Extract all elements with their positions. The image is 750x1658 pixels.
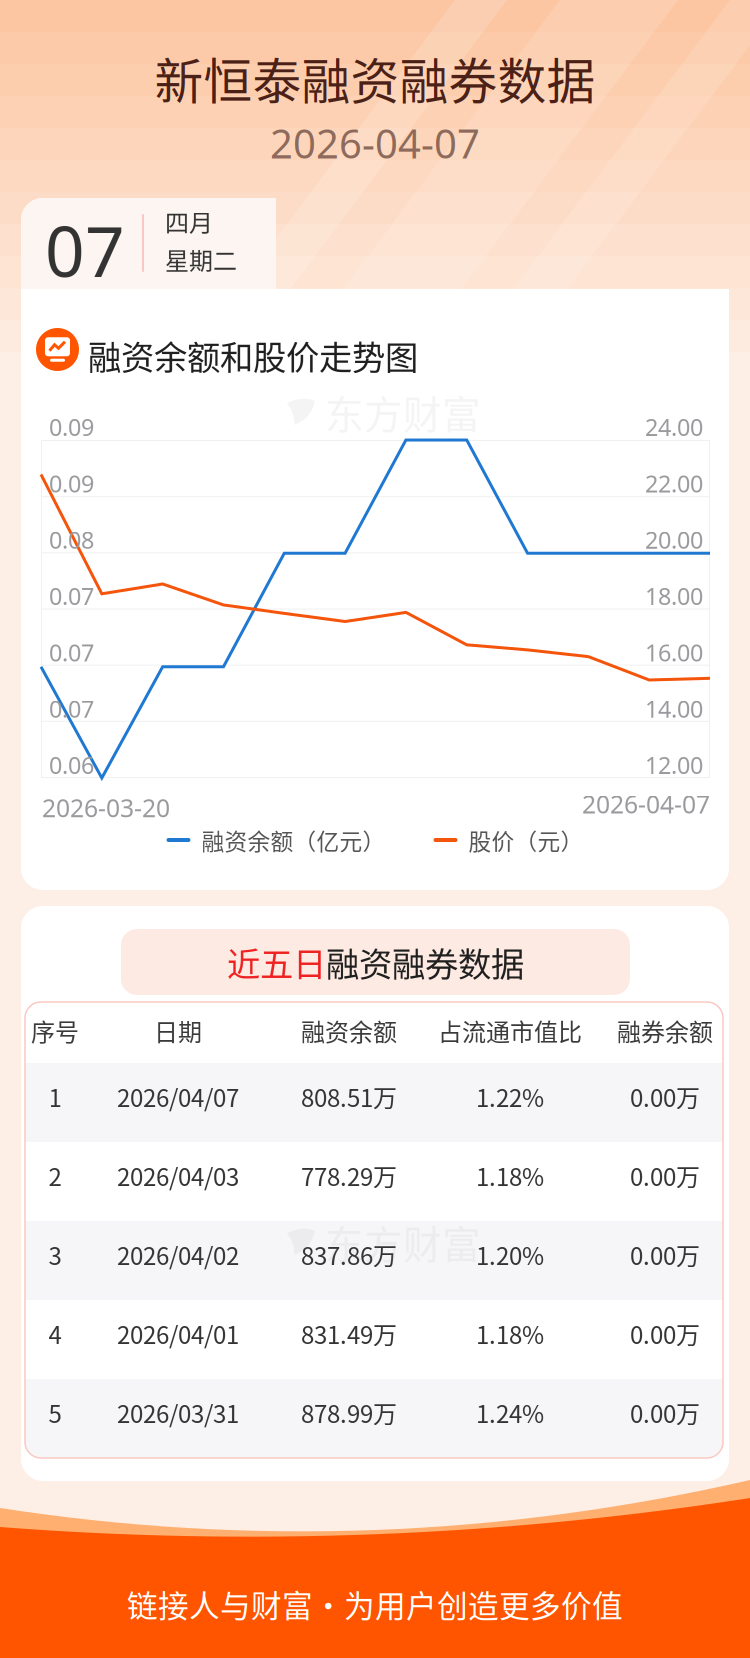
staticText: 0.07: [49, 580, 94, 612]
staticText: 星期二: [165, 242, 237, 277]
staticText: 1.20%: [476, 1237, 544, 1272]
staticText: 0.00万: [630, 1395, 700, 1430]
staticText: 融资余额（亿元）: [201, 824, 385, 856]
staticText: 1.18%: [476, 1316, 544, 1351]
staticText: 1.18%: [476, 1158, 544, 1193]
staticText: 2026-04-07: [582, 787, 710, 821]
staticText: 东方财富: [325, 1214, 481, 1270]
staticText: 0.00万: [630, 1316, 700, 1351]
staticText: 2026/04/03: [117, 1158, 239, 1193]
staticText: 16.00: [645, 636, 703, 668]
staticText: 1.24%: [476, 1395, 544, 1430]
staticText: 24.00: [645, 411, 703, 443]
staticText: 1.22%: [476, 1079, 544, 1114]
staticText: 融资余额: [301, 1013, 397, 1048]
staticText: 新恒泰融资融券数据: [154, 43, 595, 113]
staticText: 链接人与财富·为用户创造更多价值: [127, 1582, 623, 1626]
staticText: 0.09: [49, 467, 94, 499]
staticText: 股价（元）: [468, 824, 583, 856]
staticText: 0.08: [49, 524, 94, 556]
staticText: 0.09: [49, 411, 94, 443]
staticText: 2026/04/02: [117, 1237, 239, 1272]
staticText: 5: [48, 1395, 61, 1430]
staticText: 0.00万: [630, 1237, 700, 1272]
staticText: 0.06: [49, 749, 94, 781]
staticText: 3: [48, 1237, 61, 1272]
staticText: 0.00万: [630, 1158, 700, 1193]
staticText: 四月: [165, 204, 213, 239]
staticText: 占流通市值比: [438, 1013, 582, 1048]
staticText: 近五日: [227, 938, 326, 986]
staticText: 4: [48, 1316, 61, 1351]
staticText: 07: [45, 203, 125, 297]
staticText: 778.29万: [301, 1158, 397, 1193]
staticText: 14.00: [645, 693, 703, 725]
staticText: 融资余额和股价走势图: [88, 331, 418, 379]
staticText: 2: [48, 1158, 61, 1193]
staticText: 0.07: [49, 636, 94, 668]
staticText: 20.00: [645, 524, 703, 556]
staticText: 808.51万: [301, 1079, 397, 1114]
staticText: 东方财富: [325, 384, 481, 440]
staticText: 0.00万: [630, 1079, 700, 1114]
staticText: 2026/03/31: [117, 1395, 239, 1430]
staticText: 2026/04/07: [117, 1079, 239, 1114]
staticText: 18.00: [645, 580, 703, 612]
staticText: 878.99万: [301, 1395, 397, 1430]
staticText: 融券余额: [617, 1013, 713, 1048]
staticText: 831.49万: [301, 1316, 397, 1351]
staticText: 0.07: [49, 693, 94, 725]
staticText: 序号: [31, 1013, 79, 1048]
staticText: 2026-03-20: [42, 791, 170, 825]
staticText: 1: [48, 1079, 61, 1114]
staticText: 2026/04/01: [117, 1316, 239, 1351]
staticText: 日期: [154, 1013, 202, 1048]
staticText: 融资融券数据: [326, 938, 524, 986]
staticText: 2026-04-07: [270, 116, 480, 170]
staticText: 22.00: [645, 467, 703, 499]
staticText: 837.86万: [301, 1237, 397, 1272]
staticText: 12.00: [645, 749, 703, 781]
